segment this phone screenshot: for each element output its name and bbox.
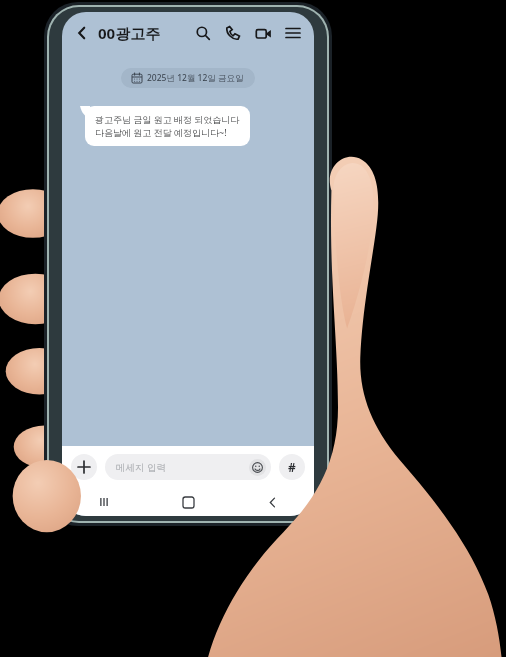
button[interactable]: Emoji xyxy=(249,459,266,476)
button[interactable]: Search xyxy=(192,22,214,44)
button[interactable]: Home xyxy=(146,488,230,516)
staticText: # xyxy=(288,459,296,475)
button[interactable]: Menu xyxy=(282,22,304,44)
button[interactable]: Hashtag xyxy=(279,454,305,480)
button[interactable]: Back xyxy=(72,23,92,43)
button[interactable]: Recent apps xyxy=(62,488,146,516)
button[interactable]: 광고주님 금일 원고 배정 되었습니다 다음날에 원고 전달 예정입니다~! xyxy=(85,106,250,146)
button[interactable]: 메세지 입력 xyxy=(105,454,271,480)
button[interactable]: 2025년 12월 12일 금요일 xyxy=(121,68,255,88)
staticText: 00광고주 xyxy=(98,23,161,43)
staticText: 광고주님 금일 원고 배정 되었습니다 다음날에 원고 전달 예정입니다~! xyxy=(95,113,240,139)
button[interactable]: Call xyxy=(222,22,244,44)
staticText: 2025년 12월 12일 금요일 xyxy=(147,72,244,84)
button[interactable]: Video call xyxy=(252,22,274,44)
staticText: 메세지 입력 xyxy=(116,461,166,474)
button[interactable]: Add attachment xyxy=(71,454,97,480)
button[interactable]: Back xyxy=(230,488,314,516)
